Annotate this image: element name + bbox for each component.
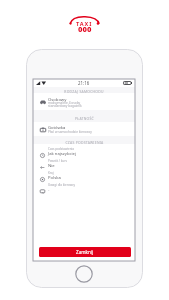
staticText: Nie (48, 163, 55, 169)
staticText: 21:16 (78, 80, 90, 86)
button[interactable]: Gotówka (33, 122, 135, 136)
button[interactable]: Uwagi dla kierowcy (33, 183, 135, 195)
staticText: standardowy bagażnik (48, 104, 82, 108)
staticText: Osobowy (48, 97, 67, 103)
button[interactable]: Osobowy (33, 93, 135, 110)
other: Taxi 000 logo (70, 16, 99, 31)
staticText: Uwagi dla kierowcy (48, 183, 76, 187)
staticText: maksymalnie 4 osoby (48, 101, 81, 105)
staticText: - (48, 187, 50, 193)
staticText: Jak najszybciej (48, 151, 77, 157)
staticText: Płać w samochodzie kierowcy (48, 130, 92, 134)
staticText: RODZAJ SAMOCHODU (64, 89, 104, 94)
button[interactable]: Powrót / kurs (33, 159, 135, 171)
button[interactable]: Zamknij (39, 247, 131, 257)
staticText: Polska (48, 175, 61, 181)
staticText: PŁATNOŚĆ (75, 116, 94, 121)
button[interactable]: Czas podstawienia (33, 147, 135, 159)
button[interactable]: Kraj (33, 171, 135, 183)
other: Home (75, 265, 93, 283)
staticText: Czas podstawienia (48, 147, 75, 151)
staticText: Zamknij (76, 249, 94, 255)
staticText: Kraj (48, 171, 54, 175)
staticText: Gotówka (48, 125, 66, 131)
staticText: Powrót / kurs (48, 159, 67, 163)
staticText: 000 (78, 24, 92, 34)
staticText: TAXI (76, 20, 93, 28)
staticText: CZAS PODSTAWIENIA (65, 140, 104, 145)
